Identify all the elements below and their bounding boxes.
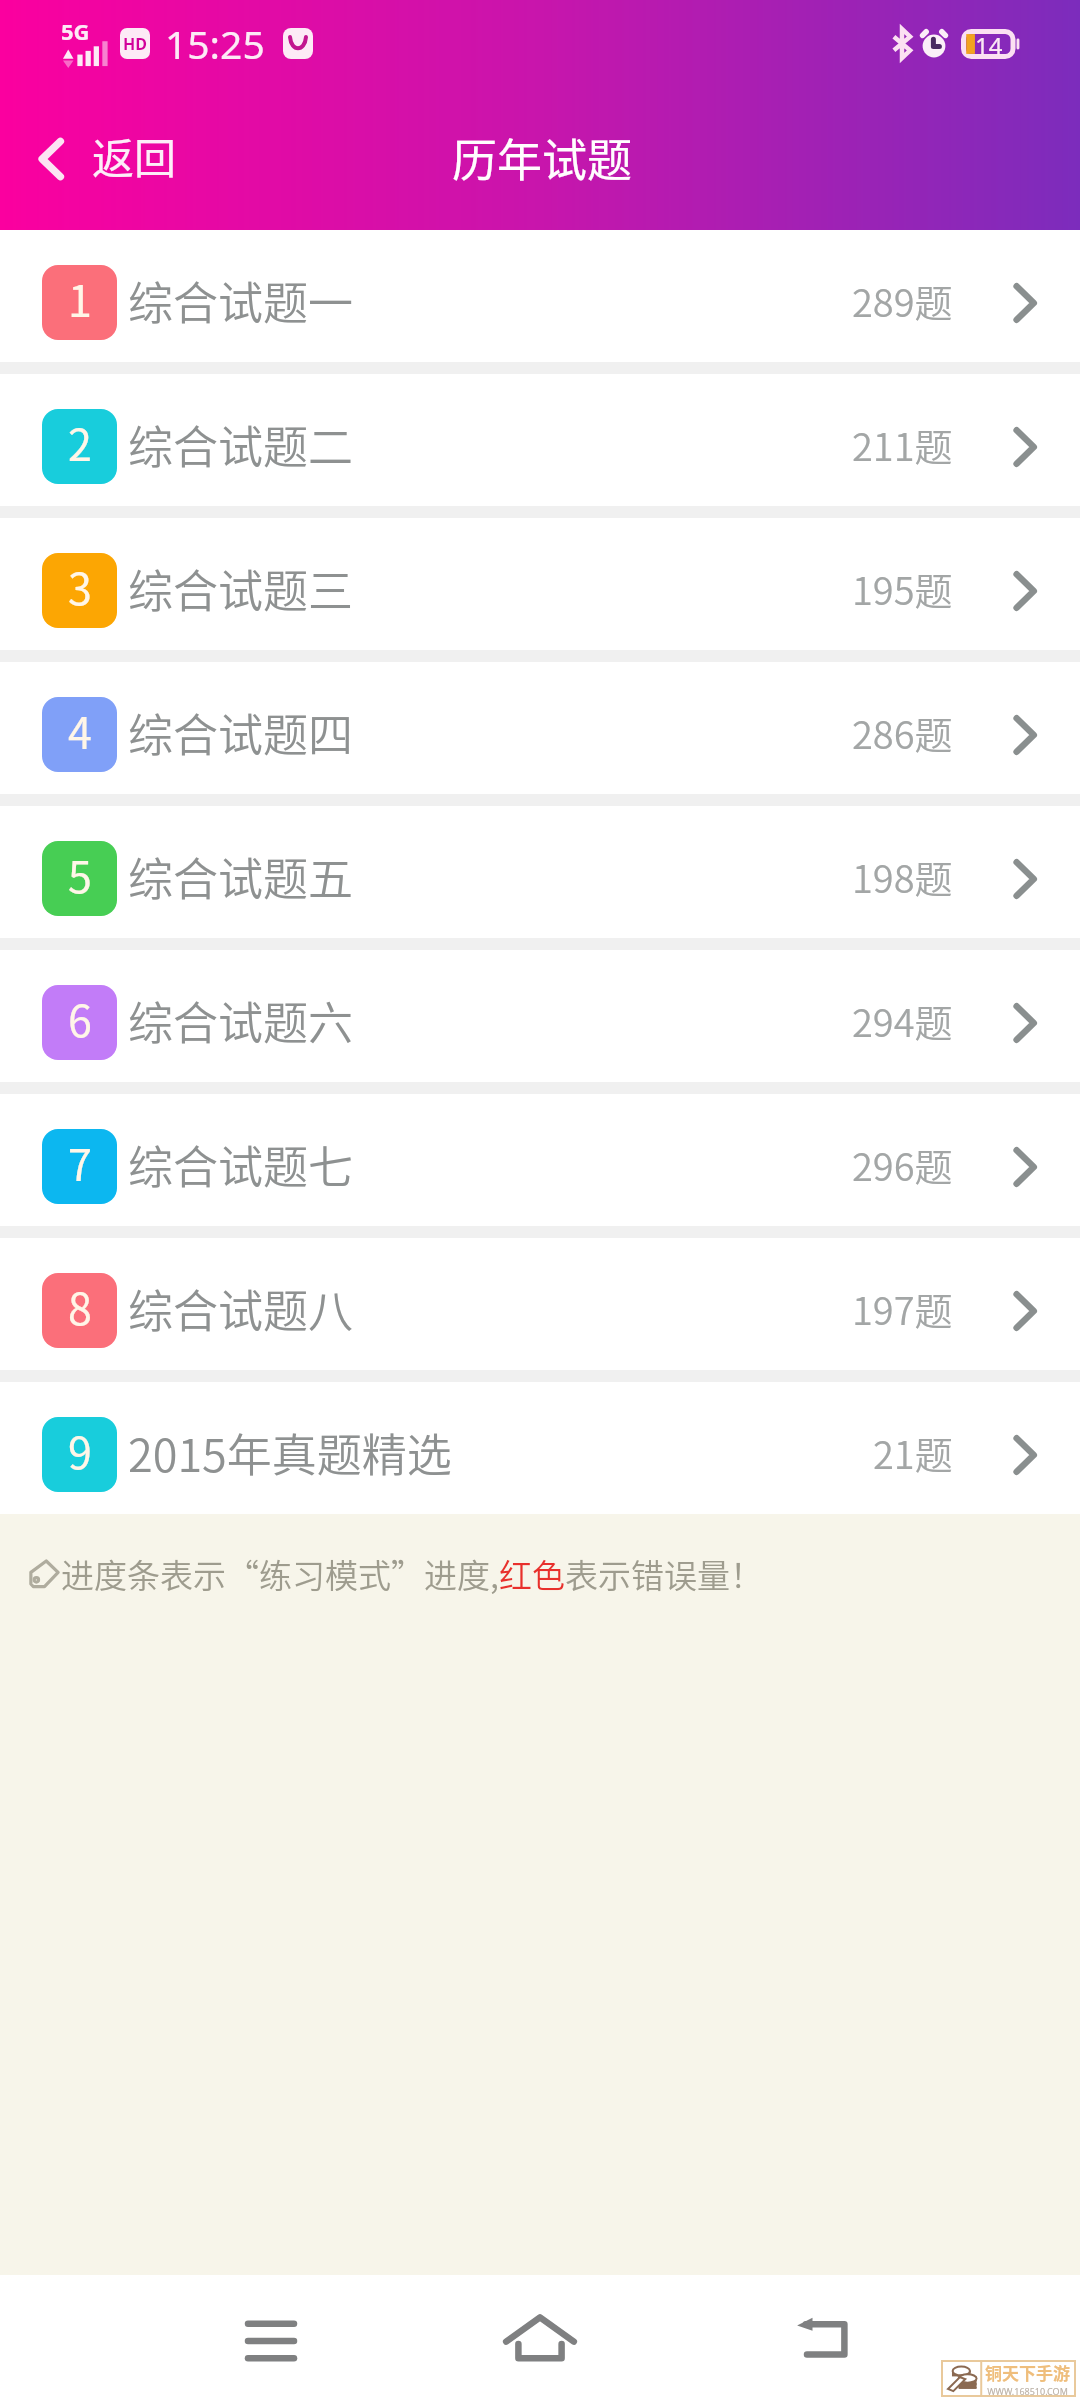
staticText: 综合试题三 [128, 556, 354, 621]
button[interactable]: 1 [0, 230, 1080, 362]
staticText: 9 [68, 1419, 92, 1481]
staticText: 286题 [852, 705, 953, 760]
staticText: 表示错误量！ [565, 1550, 763, 1598]
staticText: 197题 [852, 1281, 953, 1336]
button[interactable]: 2 [0, 374, 1080, 506]
staticText: 14 [975, 29, 1003, 59]
button[interactable]: 8 [0, 1238, 1080, 1370]
button[interactable]: Home [480, 2278, 600, 2398]
staticText: 红色 [499, 1550, 565, 1598]
button[interactable]: 返回 [0, 92, 205, 230]
staticText: 1 [68, 267, 92, 329]
staticText: 5G [61, 16, 90, 46]
staticText: 综合试题六 [128, 988, 354, 1053]
staticText: 2 [68, 411, 92, 473]
staticText: 综合试题八 [128, 1276, 354, 1341]
staticText: 3 [68, 555, 92, 617]
button[interactable]: 7 [0, 1094, 1080, 1226]
staticText: HD [123, 33, 147, 55]
staticText: 综合试题二 [128, 412, 354, 477]
staticText: 4 [68, 699, 92, 761]
staticText: 进度条表示“练习模式”进度, [61, 1550, 499, 1598]
staticText: 历年试题 [452, 125, 633, 190]
staticText: 铜天下手游 [985, 2360, 1070, 2385]
staticText: 返回 [92, 125, 177, 186]
staticText: WWW.168510.COM [987, 2385, 1068, 2395]
staticText: 综合试题四 [128, 700, 354, 765]
button[interactable]: 5 [0, 806, 1080, 938]
button[interactable]: Recent apps [211, 2278, 331, 2398]
staticText: 198题 [852, 849, 953, 904]
staticText: 21题 [873, 1425, 953, 1480]
staticText: 289题 [852, 273, 953, 328]
button[interactable]: 6 [0, 950, 1080, 1082]
staticText: 综合试题五 [128, 844, 354, 909]
staticText: 296题 [852, 1137, 953, 1192]
staticText: 6 [68, 987, 92, 1049]
staticText: 综合试题七 [128, 1132, 354, 1197]
staticText: 综合试题一 [128, 268, 354, 333]
button[interactable]: 4 [0, 662, 1080, 794]
staticText: 8 [68, 1275, 92, 1337]
button[interactable]: 3 [0, 518, 1080, 650]
button[interactable]: Back [763, 2278, 883, 2398]
staticText: 294题 [852, 993, 953, 1048]
staticText: 211题 [852, 417, 953, 472]
staticText: 2015年真题精选 [128, 1420, 452, 1485]
staticText: 7 [68, 1131, 92, 1193]
staticText: 5 [68, 843, 92, 905]
button[interactable]: 9 [0, 1382, 1080, 1514]
staticText: 15:25 [165, 17, 265, 70]
staticText: 195题 [852, 561, 953, 616]
